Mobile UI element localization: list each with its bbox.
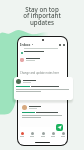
button[interactable] (20, 103, 66, 127)
button[interactable]: Tab (41, 132, 45, 137)
button[interactable]: Tab (61, 132, 65, 137)
button[interactable]: Tab (30, 132, 34, 137)
staticText: Inbox (20, 42, 31, 47)
button[interactable] (14, 77, 73, 100)
staticText: Change and update notes here (20, 71, 60, 75)
button[interactable] (26, 58, 40, 61)
staticText: Stay on top of important updates (0, 5, 84, 27)
button[interactable]: Compose (56, 124, 63, 131)
button[interactable] (24, 48, 58, 52)
button[interactable]: Tab (20, 132, 24, 137)
button[interactable]: Tab (51, 132, 55, 137)
